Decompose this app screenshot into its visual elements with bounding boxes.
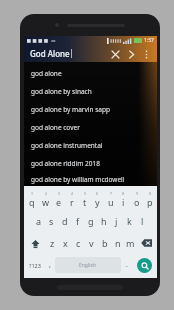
staticText: God Alone xyxy=(30,48,70,59)
staticText: c xyxy=(76,237,81,249)
button[interactable]: m xyxy=(124,232,137,254)
staticText: 1 xyxy=(31,191,34,196)
button[interactable]: ?123 xyxy=(25,254,44,276)
staticText: 1:57 xyxy=(144,37,154,44)
staticText: v xyxy=(89,237,94,249)
button[interactable]: god alone riddim 2018 xyxy=(24,154,157,172)
button[interactable]: d xyxy=(58,210,71,232)
button[interactable]: English xyxy=(55,257,121,273)
staticText: t xyxy=(83,196,87,208)
button[interactable]: 4 xyxy=(65,188,78,210)
button[interactable]: Go xyxy=(123,46,139,62)
staticText: m xyxy=(126,237,135,249)
staticText: n xyxy=(115,237,121,249)
staticText: o xyxy=(134,196,140,208)
staticText: g xyxy=(88,215,94,227)
button[interactable]: 5 xyxy=(78,188,91,210)
staticText: 4 xyxy=(71,191,74,196)
staticText: k xyxy=(127,215,132,227)
staticText: 2 xyxy=(45,191,48,196)
button[interactable]: v xyxy=(85,232,98,254)
button[interactable]: 7 xyxy=(104,188,117,210)
button[interactable]: 6 xyxy=(91,188,104,210)
staticText: . xyxy=(126,260,128,270)
button[interactable]: god alone cover xyxy=(24,118,157,136)
staticText: god alone by sinach xyxy=(31,87,92,96)
staticText: q xyxy=(29,196,35,208)
button[interactable]: 3 xyxy=(52,188,65,210)
staticText: 0 xyxy=(149,191,152,196)
staticText: 6 xyxy=(96,191,99,196)
button[interactable]: x xyxy=(59,232,72,254)
button[interactable]: , xyxy=(44,254,55,276)
staticText: 3 xyxy=(58,191,61,196)
staticText: x xyxy=(63,237,68,249)
staticText: god alone riddim 2018 xyxy=(31,159,100,168)
staticText: English xyxy=(79,262,97,269)
staticText: e xyxy=(56,196,62,208)
button[interactable]: god alone by sinach xyxy=(24,82,157,100)
staticText: 8 xyxy=(122,191,125,196)
button[interactable]: 9 xyxy=(130,188,143,210)
staticText: god alone cover xyxy=(31,123,80,132)
button[interactable]: god alone by william mcdowell xyxy=(24,172,157,186)
staticText: j xyxy=(115,215,118,227)
staticText: l xyxy=(141,215,144,227)
staticText: s xyxy=(49,215,54,227)
button[interactable]: h xyxy=(97,210,110,232)
staticText: god alone xyxy=(31,69,62,78)
button[interactable]: a xyxy=(32,210,45,232)
staticText: f xyxy=(76,215,80,227)
staticText: 7 xyxy=(110,191,113,196)
button[interactable]: Shift xyxy=(25,232,45,254)
button[interactable]: god alone by marvin sapp xyxy=(24,100,157,118)
button[interactable]: god alone xyxy=(24,64,157,82)
button[interactable]: g xyxy=(84,210,97,232)
staticText: god alone instrumental xyxy=(31,141,103,150)
button[interactable]: God Alone xyxy=(30,48,107,59)
button[interactable]: k xyxy=(123,210,136,232)
staticText: b xyxy=(102,237,108,249)
staticText: , xyxy=(49,260,51,270)
button[interactable]: c xyxy=(72,232,85,254)
staticText: ?123 xyxy=(29,262,41,269)
button[interactable]: 0 xyxy=(143,188,156,210)
button[interactable]: More options xyxy=(139,47,153,61)
staticText: i xyxy=(122,196,125,208)
button[interactable]: 2 xyxy=(39,188,52,210)
button[interactable]: Clear query xyxy=(107,46,123,62)
button[interactable]: s xyxy=(45,210,58,232)
staticText: 9 xyxy=(136,191,139,196)
button[interactable]: n xyxy=(111,232,124,254)
staticText: z xyxy=(50,237,55,249)
staticText: a xyxy=(36,215,42,227)
staticText: god alone by william mcdowell xyxy=(31,175,125,184)
staticText: w xyxy=(42,196,50,208)
staticText: r xyxy=(70,196,74,208)
button[interactable]: . xyxy=(121,254,132,276)
staticText: h xyxy=(101,215,107,227)
button[interactable]: 8 xyxy=(117,188,130,210)
button[interactable]: Search xyxy=(137,258,152,273)
staticText: p xyxy=(147,196,153,208)
staticText: god alone by marvin sapp xyxy=(31,105,110,114)
button[interactable]: b xyxy=(98,232,111,254)
button[interactable]: Backspace xyxy=(137,232,156,254)
button[interactable]: 1 xyxy=(25,188,39,210)
staticText: y xyxy=(95,196,100,208)
button[interactable]: l xyxy=(136,210,149,232)
staticText: d xyxy=(62,215,68,227)
button[interactable]: f xyxy=(71,210,84,232)
button[interactable]: god alone instrumental xyxy=(24,136,157,154)
staticText: u xyxy=(108,196,114,208)
staticText: 5 xyxy=(84,191,87,196)
button[interactable]: j xyxy=(110,210,123,232)
button[interactable]: z xyxy=(45,232,59,254)
